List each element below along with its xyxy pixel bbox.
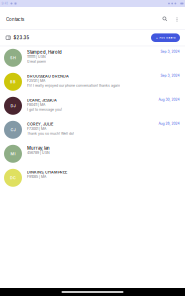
staticText: MI: [10, 151, 15, 156]
staticText: Sep 3, 2024: [160, 74, 179, 78]
staticText: Murray, Ian: [27, 145, 50, 151]
button[interactable]: +: [151, 33, 180, 42]
button[interactable]: DJ: [0, 94, 185, 118]
staticText: Aug 30, 2024: [158, 98, 179, 102]
staticText: COREY, JULIE: [27, 122, 53, 126]
button[interactable]: More options: [170, 15, 181, 24]
staticText: F25131 | MA: [27, 79, 45, 83]
staticText: DJ: [10, 103, 15, 108]
staticText: Thank you so much! Well do!: [27, 131, 74, 136]
button[interactable]: MI: [0, 142, 185, 166]
staticText: Add Balance: [159, 36, 175, 39]
staticText: Great poem: [27, 59, 46, 64]
staticText: BROUSSEAU BRENDA: [27, 74, 69, 78]
button[interactable]: DC: [0, 166, 185, 190]
staticText: Sep 3, 2024: [160, 50, 179, 54]
staticText: 11111111 | USN: [27, 55, 46, 59]
button[interactable]: SH: [0, 46, 185, 70]
staticText: CJ: [10, 127, 15, 132]
button[interactable]: Search: [161, 15, 170, 24]
staticText: I got to message you!: [27, 107, 62, 112]
staticText: F80411 | MA: [27, 103, 45, 107]
staticText: F73001 | MA: [27, 127, 46, 131]
staticText: F91085 | MA: [27, 175, 46, 179]
button[interactable]: BB: [0, 70, 185, 94]
staticText: +: [156, 36, 158, 40]
staticText: 9:41: [1, 2, 7, 5]
staticText: BB: [10, 79, 16, 84]
staticText: DC: [10, 175, 16, 180]
staticText: Aug 28, 2024: [158, 122, 179, 126]
staticText: SH: [10, 55, 16, 60]
button[interactable]: CJ: [0, 118, 185, 142]
staticText: $23.35: [13, 35, 29, 40]
staticText: Stamped, Harold: [27, 49, 62, 55]
staticText: Contacts: [6, 17, 24, 22]
staticText: DINKINS, CHAMPREE: [27, 170, 67, 174]
staticText: 456789 | USN: [27, 151, 50, 155]
staticText: DEANE, JESSICA: [27, 98, 57, 102]
staticText: Hi! I really enjoyed our phone conversat…: [27, 83, 120, 88]
